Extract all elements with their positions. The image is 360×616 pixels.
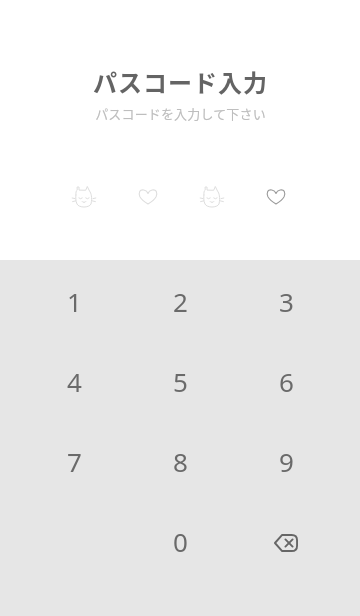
- button[interactable]: 2: [127, 261, 233, 341]
- staticText: 3: [279, 284, 294, 319]
- staticText: 0: [173, 524, 188, 559]
- button[interactable]: 5: [127, 341, 233, 421]
- button[interactable]: 4: [21, 341, 127, 421]
- staticText: 6: [279, 364, 294, 399]
- button[interactable]: 9: [233, 421, 339, 501]
- staticText: 8: [173, 444, 188, 479]
- button[interactable]: 3: [233, 261, 339, 341]
- staticText: パスコードを入力して下さい: [95, 104, 266, 123]
- button[interactable]: 0: [127, 501, 233, 581]
- button[interactable]: Delete: [233, 501, 339, 581]
- staticText: 4: [67, 364, 82, 399]
- button[interactable]: 8: [127, 421, 233, 501]
- button[interactable]: 1: [21, 261, 127, 341]
- staticText: 2: [173, 284, 188, 319]
- button[interactable]: 6: [233, 341, 339, 421]
- staticText: 7: [67, 444, 82, 479]
- staticText: 5: [173, 364, 188, 399]
- staticText: パスコード入力: [93, 64, 268, 98]
- button[interactable]: 7: [21, 421, 127, 501]
- staticText: 1: [67, 284, 82, 319]
- staticText: 9: [279, 444, 294, 479]
